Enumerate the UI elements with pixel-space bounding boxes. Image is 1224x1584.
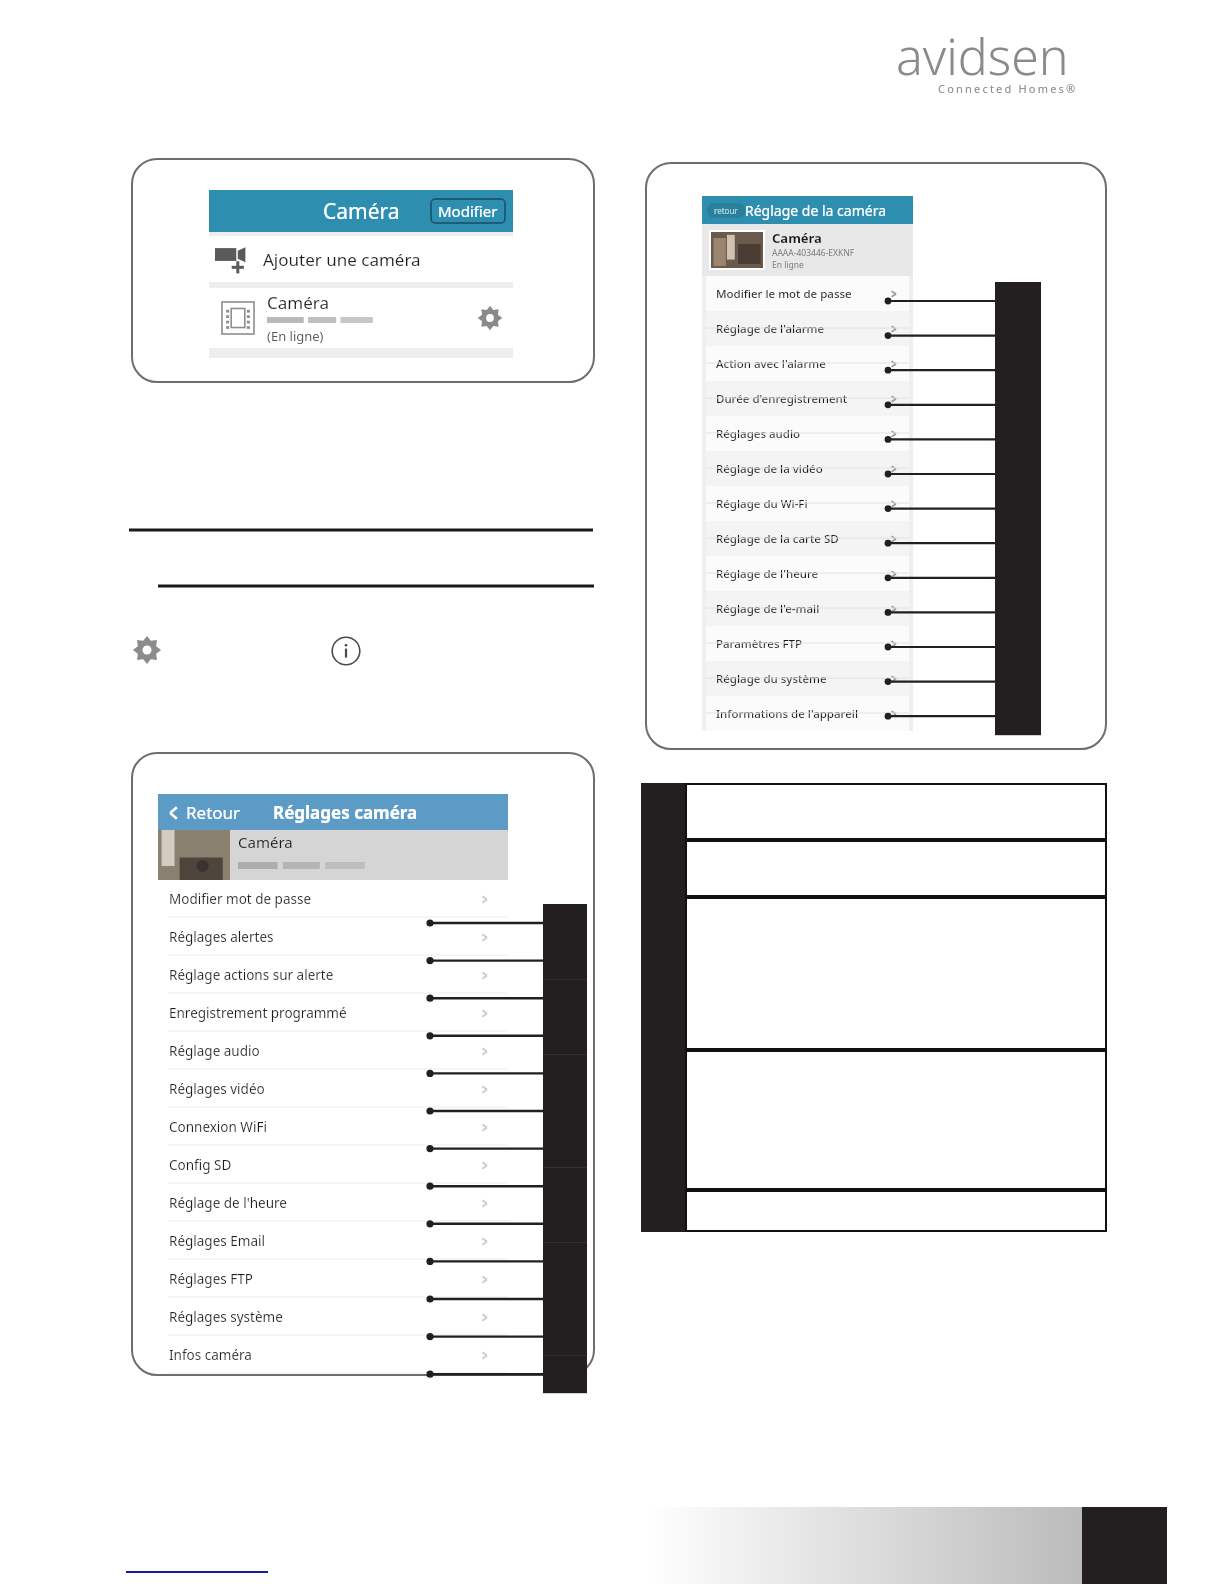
staticText: Réglage de l'heure	[716, 566, 819, 582]
staticText: Ajouter une caméra	[263, 248, 421, 271]
button[interactable]: Réglages caméra	[473, 301, 507, 335]
staticText: Action avec l'alarme	[716, 356, 826, 372]
staticText: Réglage de l'e-mail	[716, 601, 820, 617]
staticText: Réglage du système	[716, 671, 827, 687]
staticText: Modifier le mot de passe	[716, 286, 852, 302]
button[interactable]: retour	[714, 205, 738, 216]
staticText: Caméra	[238, 832, 293, 852]
button[interactable]: Caméra	[209, 288, 513, 348]
staticText: Durée d'enregistrement	[716, 391, 848, 407]
staticText: retour	[714, 205, 738, 216]
staticText: Modifier	[438, 201, 498, 221]
button[interactable]: Paramètres FTP	[706, 626, 909, 661]
staticText: Modifier mot de passe	[169, 890, 312, 908]
staticText: Réglages FTP	[169, 1270, 253, 1288]
staticText: Réglage de l'heure	[169, 1194, 287, 1212]
staticText: En ligne	[772, 259, 804, 271]
button[interactable]: Réglage du système	[706, 661, 909, 696]
staticText: Caméra	[267, 291, 329, 314]
button[interactable]: Modifier mot de passe	[158, 880, 508, 918]
staticText: Réglages caméra	[273, 801, 418, 824]
button[interactable]: Réglage de l'heure	[158, 1184, 508, 1222]
staticText: Réglage du Wi-Fi	[716, 496, 808, 512]
button[interactable]: Modifier	[438, 201, 498, 221]
button[interactable]: Réglages audio	[706, 416, 909, 451]
button[interactable]: Action avec l'alarme	[706, 346, 909, 381]
button[interactable]: Informations de l'appareil	[706, 696, 909, 731]
button[interactable]: Infos caméra	[158, 1336, 508, 1374]
button[interactable]: Réglages alertes	[158, 918, 508, 956]
staticText: Retour	[186, 801, 241, 824]
staticText: Connexion WiFi	[169, 1118, 267, 1136]
staticText: Connected Homes®	[938, 81, 1078, 96]
button[interactable]: Réglages	[130, 633, 164, 667]
button[interactable]: Réglage de l'e-mail	[706, 591, 909, 626]
button[interactable]: Informations	[329, 634, 363, 668]
button[interactable]: Réglage de l'heure	[706, 556, 909, 591]
staticText: (En ligne)	[267, 327, 324, 345]
button[interactable]: Durée d'enregistrement	[706, 381, 909, 416]
staticText: Réglages alertes	[169, 928, 274, 946]
staticText: Informations de l'appareil	[716, 706, 859, 722]
staticText: AAAA-403446-EXKNF	[772, 247, 855, 259]
staticText: Réglage de la vidéo	[716, 461, 823, 477]
button[interactable]: Réglage audio	[158, 1032, 508, 1070]
staticText: Réglage de la caméra	[745, 201, 886, 220]
staticText: Réglage de l'alarme	[716, 321, 825, 337]
button[interactable]: Config SD	[158, 1146, 508, 1184]
staticText: Paramètres FTP	[716, 636, 803, 652]
button[interactable]: Réglages système	[158, 1298, 508, 1336]
staticText: Config SD	[169, 1156, 232, 1174]
staticText: avidsen	[896, 22, 1069, 90]
button[interactable]: Réglage actions sur alerte	[158, 956, 508, 994]
staticText: Réglage audio	[169, 1042, 260, 1060]
button[interactable]: Réglage de la vidéo	[706, 451, 909, 486]
button[interactable]: Enregistrement programmé	[158, 994, 508, 1032]
button[interactable]: Modifier le mot de passe	[706, 276, 909, 311]
button[interactable]: Réglage du Wi-Fi	[706, 486, 909, 521]
button[interactable]: Retour	[166, 801, 241, 824]
staticText: Réglages Email	[169, 1232, 265, 1250]
staticText: Infos caméra	[169, 1346, 252, 1364]
button[interactable]: Réglages Email	[158, 1222, 508, 1260]
button[interactable]: Ajouter une caméra	[209, 236, 513, 282]
staticText: Réglages système	[169, 1308, 283, 1326]
button[interactable]: Réglage de la carte SD	[706, 521, 909, 556]
staticText: Caméra	[323, 197, 400, 226]
button[interactable]: Réglages FTP	[158, 1260, 508, 1298]
staticText: Réglages vidéo	[169, 1080, 265, 1098]
staticText: Réglages audio	[716, 426, 801, 442]
button[interactable]: Connexion WiFi	[158, 1108, 508, 1146]
staticText: Réglage actions sur alerte	[169, 966, 334, 984]
button[interactable]: Réglages vidéo	[158, 1070, 508, 1108]
staticText: Réglage de la carte SD	[716, 531, 839, 547]
staticText: Caméra	[772, 229, 822, 247]
staticText: Enregistrement programmé	[169, 1004, 347, 1022]
button[interactable]: Réglage de l'alarme	[706, 311, 909, 346]
